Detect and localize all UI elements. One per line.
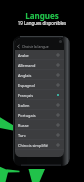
button[interactable]: Russe xyxy=(15,120,64,130)
button[interactable]: Allemand xyxy=(15,60,64,70)
staticText: Italien xyxy=(18,103,30,108)
staticText: Allemand xyxy=(18,63,36,68)
button[interactable]: Anglais xyxy=(15,70,64,80)
staticText: Espagnol xyxy=(18,83,35,88)
staticText: Langues xyxy=(0,10,84,21)
button[interactable]: Chinois simplifié xyxy=(15,140,64,150)
staticText: Turc xyxy=(18,133,26,138)
button[interactable]: Back xyxy=(16,44,21,49)
button[interactable]: Portugais xyxy=(15,110,64,120)
staticText: Choisir la langue xyxy=(22,44,49,49)
staticText: Portugais xyxy=(18,113,36,118)
button[interactable]: Turc xyxy=(15,130,64,140)
button[interactable]: Français xyxy=(15,90,64,100)
button[interactable]: Italien xyxy=(15,100,64,110)
staticText: 19 Langues disponibles xyxy=(0,20,84,26)
button[interactable]: Arabe xyxy=(15,50,64,60)
staticText: Anglais xyxy=(18,73,32,78)
staticText: Russe xyxy=(18,123,29,128)
staticText: Arabe xyxy=(18,53,29,58)
staticText: Français xyxy=(18,93,34,98)
button[interactable]: Espagnol xyxy=(15,80,64,90)
staticText: Chinois simplifié xyxy=(18,143,48,148)
